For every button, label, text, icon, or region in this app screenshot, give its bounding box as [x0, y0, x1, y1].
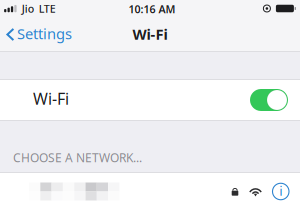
button[interactable]: Wi-Fi	[250, 89, 288, 111]
staticText: CHOOSE A NETWORK...	[13, 150, 142, 165]
staticText: Wi-Fi	[33, 88, 69, 109]
staticText: Jio	[22, 1, 35, 16]
staticText: Wi-Fi	[132, 24, 167, 44]
staticText: 10:16 AM	[128, 2, 175, 16]
button[interactable]: Settings	[0, 20, 78, 51]
staticText: i	[279, 182, 282, 199]
button[interactable]: i	[0, 173, 300, 210]
staticText: LTE	[39, 1, 56, 16]
staticText: Settings	[17, 24, 72, 43]
